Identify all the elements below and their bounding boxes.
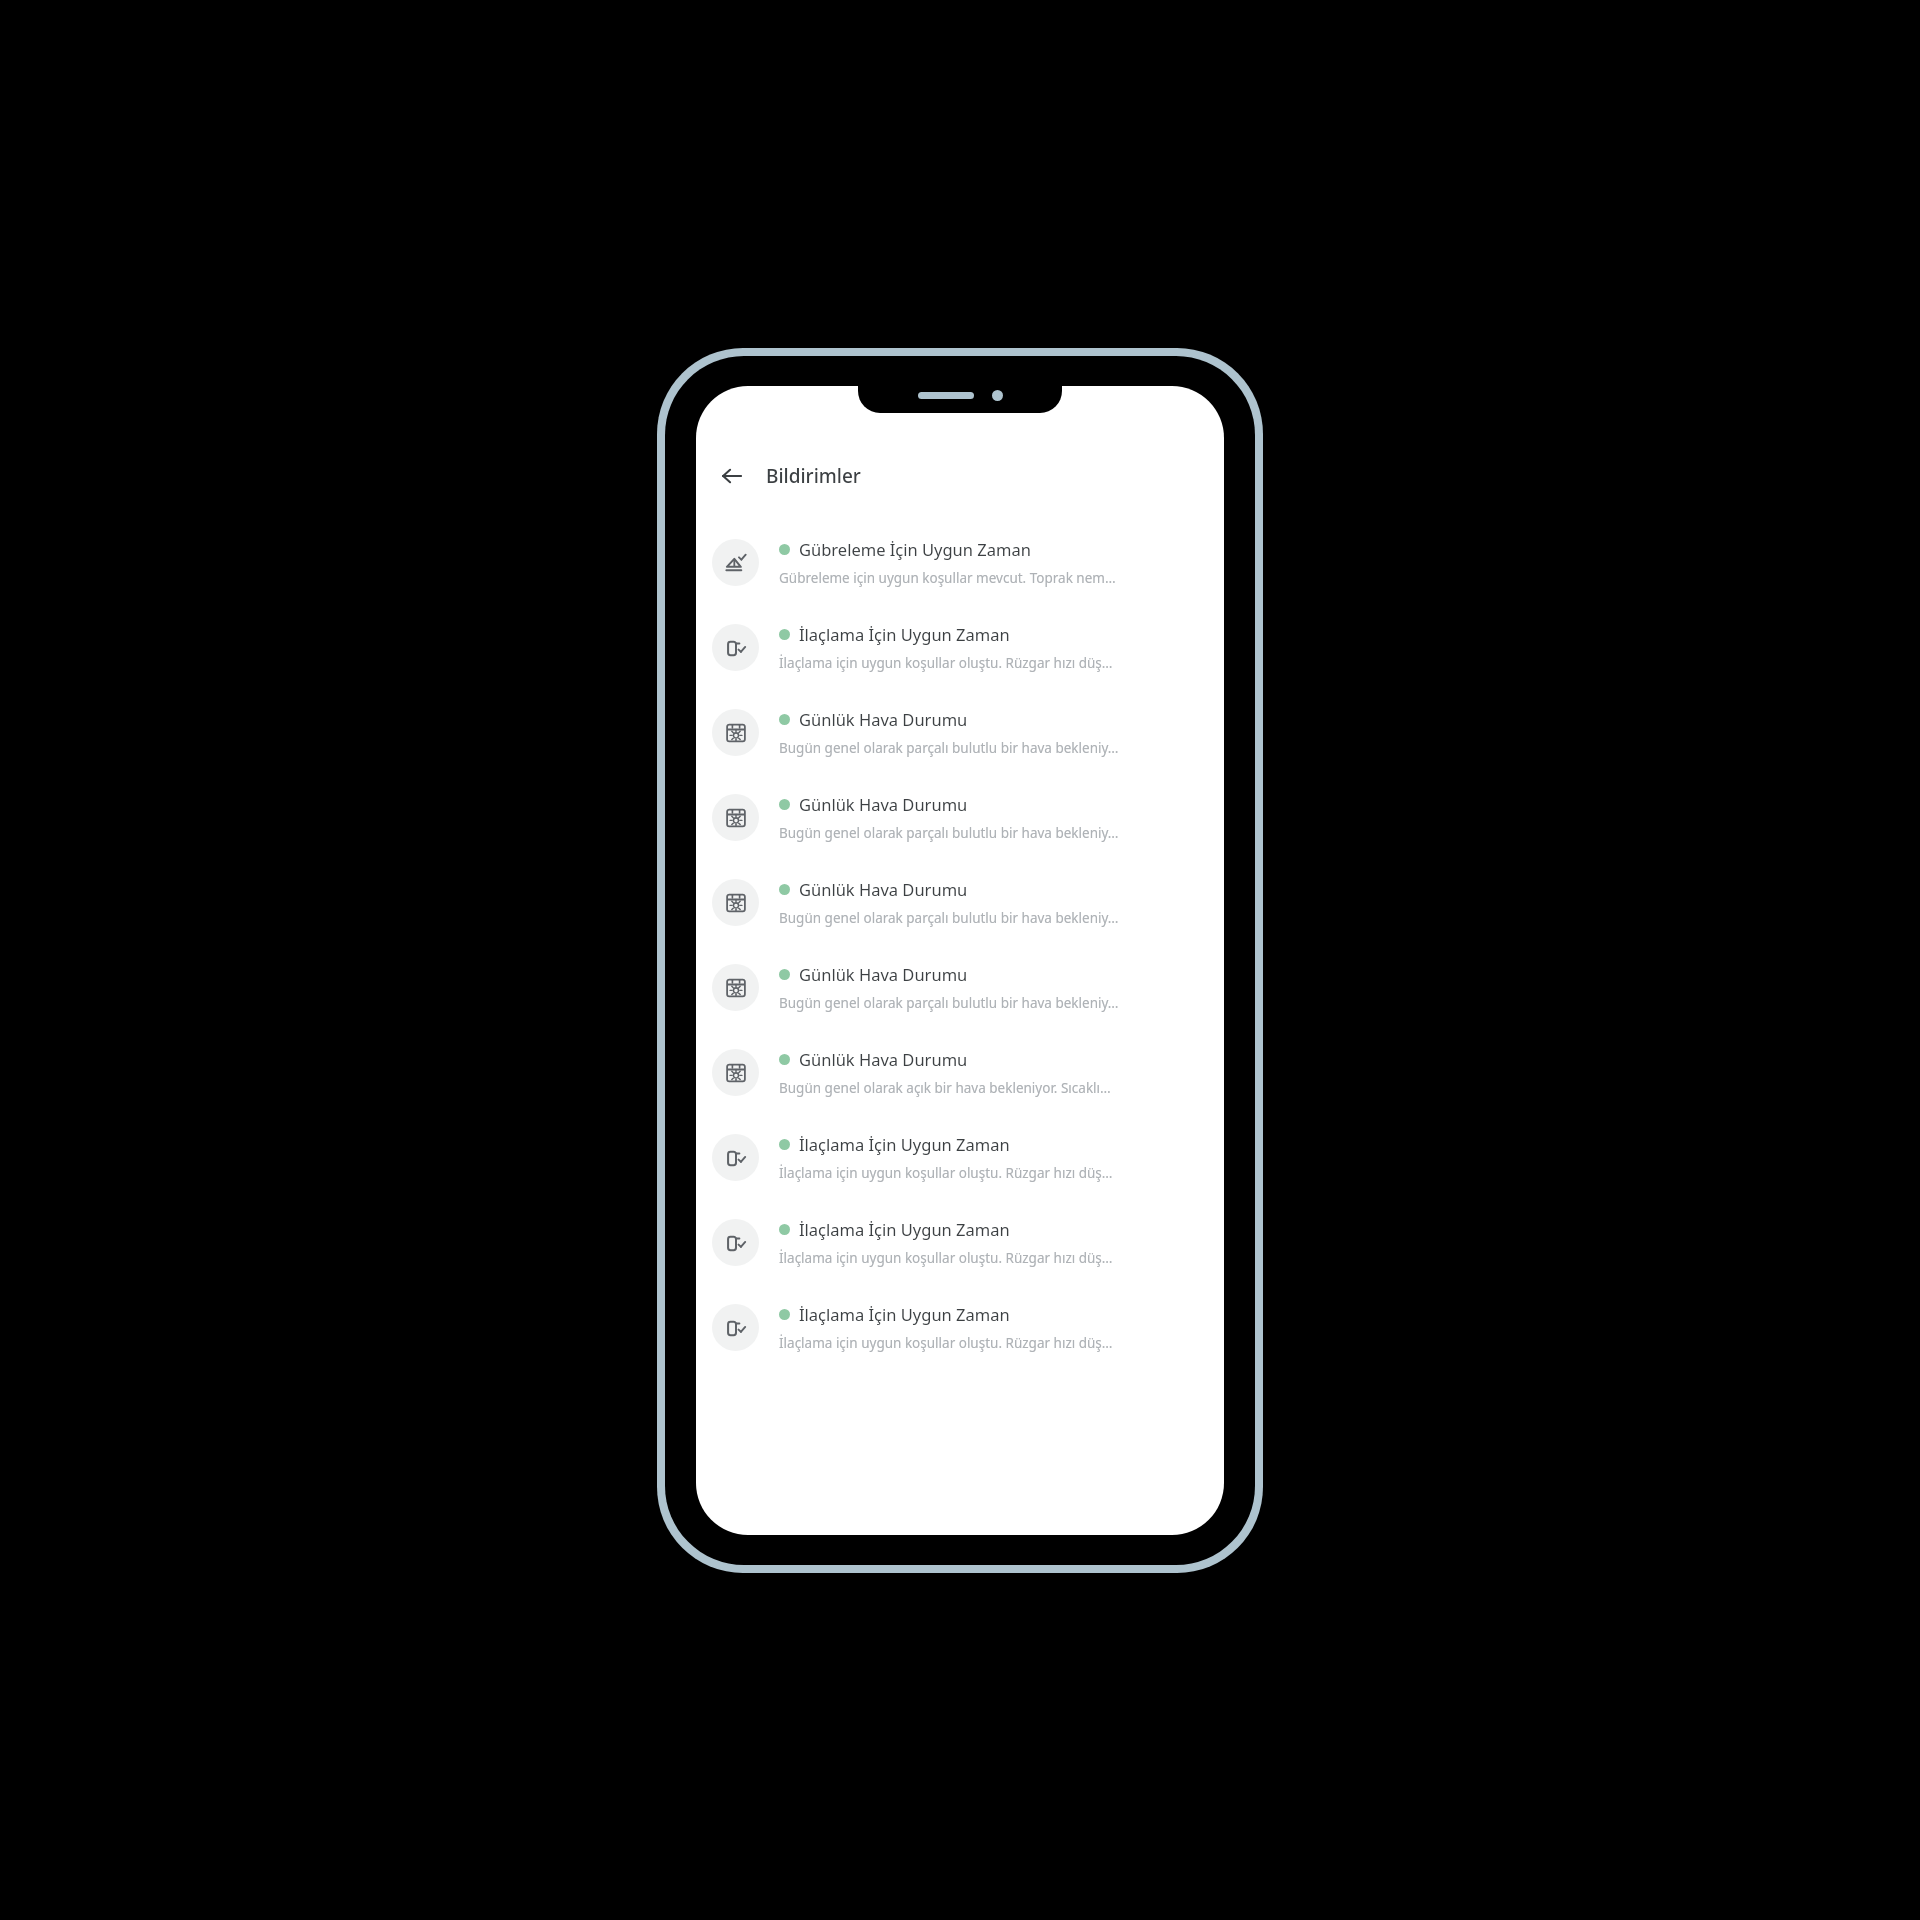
button[interactable]: Günlük Hava Durumu <box>696 690 1224 775</box>
staticText: İlaçlama İçin Uygun Zaman <box>799 1133 1010 1155</box>
button[interactable]: Günlük Hava Durumu <box>696 945 1224 1030</box>
staticText: Gübreleme İçin Uygun Zaman <box>799 538 1031 560</box>
staticText: İlaçlama için uygun koşullar oluştu. Rüz… <box>779 1249 1113 1267</box>
staticText: İlaçlama için uygun koşullar oluştu. Rüz… <box>779 654 1113 672</box>
staticText: İlaçlama İçin Uygun Zaman <box>799 623 1010 645</box>
staticText: İlaçlama İçin Uygun Zaman <box>799 1303 1010 1325</box>
staticText: Günlük Hava Durumu <box>799 793 968 815</box>
staticText: Günlük Hava Durumu <box>799 878 968 900</box>
staticText: Bugün genel olarak parçalı bulutlu bir h… <box>779 994 1119 1012</box>
button[interactable]: İlaçlama İçin Uygun Zaman <box>696 1200 1224 1285</box>
button[interactable]: İlaçlama İçin Uygun Zaman <box>696 1115 1224 1200</box>
staticText: İlaçlama için uygun koşullar oluştu. Rüz… <box>779 1164 1113 1182</box>
button[interactable]: Günlük Hava Durumu <box>696 860 1224 945</box>
staticText: Bugün genel olarak parçalı bulutlu bir h… <box>779 739 1119 757</box>
button[interactable]: Günlük Hava Durumu <box>696 775 1224 860</box>
staticText: Gübreleme için uygun koşullar mevcut. To… <box>779 569 1116 587</box>
staticText: Günlük Hava Durumu <box>799 1048 968 1070</box>
button[interactable]: Back <box>710 454 754 498</box>
staticText: Bugün genel olarak parçalı bulutlu bir h… <box>779 824 1119 842</box>
staticText: Bugün genel olarak açık bir hava bekleni… <box>779 1079 1111 1097</box>
button[interactable]: Günlük Hava Durumu <box>696 1030 1224 1115</box>
staticText: Bildirimler <box>766 463 861 489</box>
staticText: İlaçlama İçin Uygun Zaman <box>799 1218 1010 1240</box>
staticText: Bugün genel olarak parçalı bulutlu bir h… <box>779 909 1119 927</box>
button[interactable]: İlaçlama İçin Uygun Zaman <box>696 605 1224 690</box>
staticText: Günlük Hava Durumu <box>799 963 968 985</box>
staticText: Günlük Hava Durumu <box>799 708 968 730</box>
staticText: İlaçlama için uygun koşullar oluştu. Rüz… <box>779 1334 1113 1352</box>
button[interactable]: İlaçlama İçin Uygun Zaman <box>696 1285 1224 1370</box>
button[interactable]: Gübreleme İçin Uygun Zaman <box>696 520 1224 605</box>
